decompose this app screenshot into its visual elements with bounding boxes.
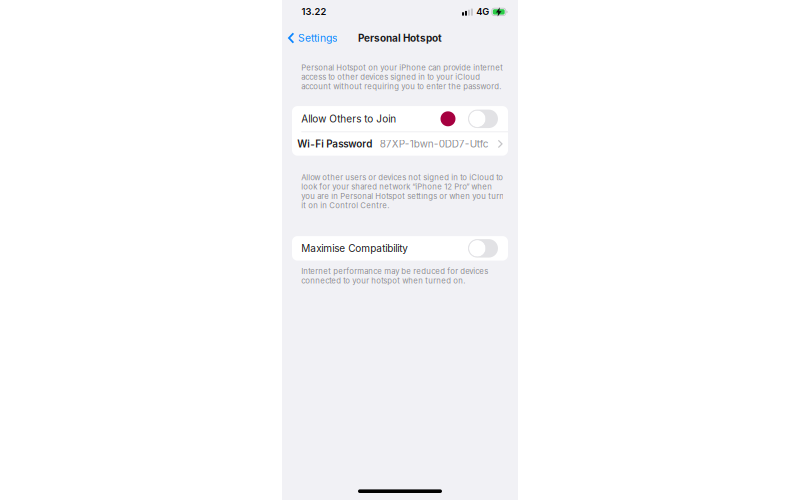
button[interactable]: Maximise Compatibility	[292, 236, 508, 261]
staticText: Settings	[298, 32, 337, 44]
staticText: Wi-Fi Password	[297, 138, 372, 150]
staticText: Personal Hotspot on your iPhone can prov…	[301, 63, 503, 91]
staticText: Allow other users or devices not signed …	[301, 173, 504, 210]
button[interactable]: Settings	[282, 27, 342, 49]
button[interactable]: Allow Others to Join	[292, 106, 508, 132]
staticText: Internet performance may be reduced for …	[301, 267, 488, 285]
staticText: Personal Hotspot	[358, 32, 442, 44]
staticText: Maximise Compatibility	[301, 242, 408, 254]
staticText: 13.22	[301, 6, 326, 17]
staticText: Allow Others to Join	[301, 113, 396, 125]
staticText: 87XP-1bwn-0DD7-Utfc	[380, 138, 489, 150]
staticText: 4G	[476, 6, 489, 17]
button[interactable]: Wi-Fi Password	[292, 132, 508, 156]
